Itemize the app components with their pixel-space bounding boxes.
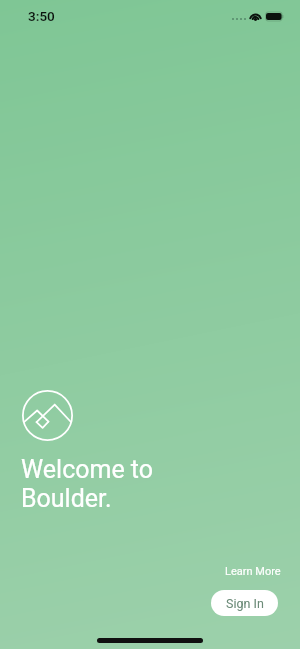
staticText: 3:50 bbox=[28, 8, 55, 24]
staticText: Welcome to Boulder. bbox=[21, 455, 154, 513]
staticText: Sign In bbox=[226, 596, 264, 611]
button[interactable]: Learn More bbox=[220, 561, 286, 582]
button[interactable]: Sign In bbox=[211, 590, 278, 616]
other: Cellular signal bbox=[232, 18, 246, 20]
staticText: Learn More bbox=[225, 565, 281, 578]
other: Wi-Fi bbox=[249, 12, 262, 20]
other: Battery bbox=[266, 13, 285, 20]
